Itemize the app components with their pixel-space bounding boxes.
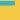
button[interactable]: Now Playing bbox=[0, 1, 15, 6]
